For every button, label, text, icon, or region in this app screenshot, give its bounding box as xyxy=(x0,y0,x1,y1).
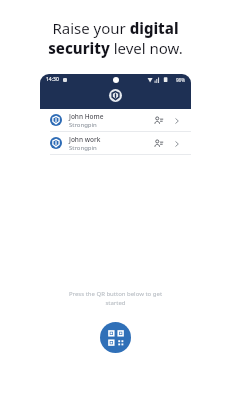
staticText: John work xyxy=(69,135,101,144)
staticText: Press the QR button below to get started xyxy=(66,290,165,307)
staticText: Raise your digital xyxy=(52,18,179,38)
button[interactable]: Open xyxy=(171,138,182,149)
button[interactable]: Scan QR code xyxy=(100,322,131,353)
button[interactable]: John work xyxy=(40,132,191,154)
button[interactable]: John Home xyxy=(40,109,191,131)
staticText: Strongpin xyxy=(69,121,97,129)
button[interactable]: Open xyxy=(171,115,182,126)
staticText: Strongpin xyxy=(69,144,97,152)
staticText: 14:30 xyxy=(46,76,59,83)
button[interactable]: Manage account xyxy=(152,114,165,127)
staticText: security level now. xyxy=(48,38,183,58)
staticText: 98% xyxy=(176,77,185,83)
button[interactable]: Manage account xyxy=(152,137,165,150)
button[interactable]: Strongpin logo xyxy=(109,89,122,102)
staticText: John Home xyxy=(69,112,104,121)
